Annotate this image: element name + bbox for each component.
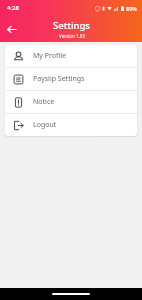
button[interactable]: My Profile — [5, 45, 137, 67]
button[interactable]: Back — [0, 18, 22, 40]
button[interactable]: Logout — [5, 114, 137, 136]
staticText: Version 1.65 — [59, 33, 85, 39]
staticText: Notice — [33, 97, 55, 107]
button[interactable]: Payslip Settings — [5, 68, 137, 90]
staticText: Payslip Settings — [33, 74, 85, 84]
button[interactable]: Notice — [5, 91, 137, 113]
staticText: 4:28 — [7, 4, 19, 12]
staticText: Settings — [53, 19, 90, 32]
staticText: 89% — [126, 5, 137, 12]
staticText: My Profile — [33, 51, 66, 61]
staticText: Logout — [33, 120, 57, 130]
